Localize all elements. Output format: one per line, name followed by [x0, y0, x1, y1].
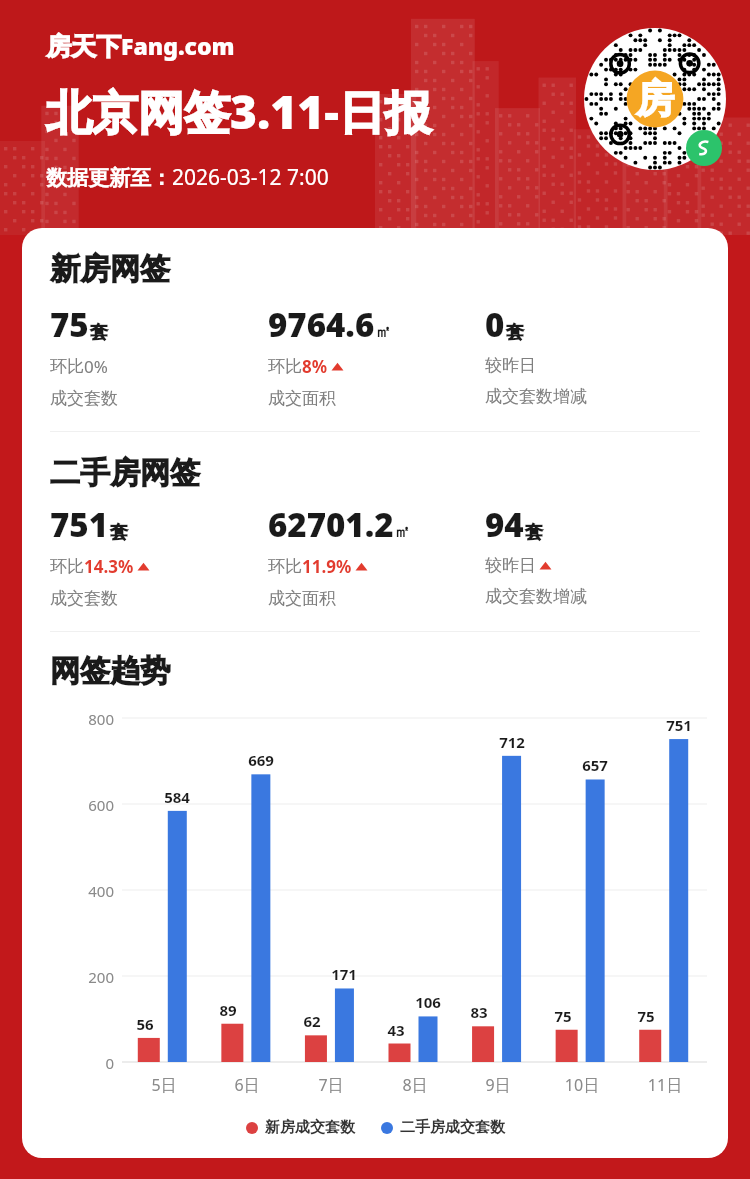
staticText: 较昨日	[485, 355, 536, 376]
staticText: 11.9%	[302, 555, 352, 578]
staticText: 房天下	[46, 31, 121, 62]
staticText: 6日	[217, 1074, 277, 1096]
staticText: ㎡	[375, 322, 391, 342]
staticText: 56	[121, 1014, 169, 1034]
staticText: 成交面积	[268, 588, 336, 609]
staticText: 11日	[635, 1074, 695, 1096]
staticText: 75	[539, 1006, 587, 1026]
staticText: 10日	[552, 1074, 612, 1096]
button[interactable]: 9764.6	[268, 302, 485, 409]
staticText: 94	[485, 502, 524, 547]
staticText: ㎡	[394, 522, 410, 542]
staticText: 9日	[468, 1074, 528, 1096]
staticText: 400	[62, 881, 114, 901]
staticText: 成交套数增减	[485, 586, 587, 607]
staticText: 0	[62, 1053, 114, 1073]
staticText: 83	[455, 1002, 503, 1022]
staticText: 89	[204, 1000, 252, 1020]
staticText: 套	[506, 321, 524, 344]
staticText: 2026-03-12 7:00	[172, 163, 329, 192]
staticText: 新房网签	[50, 250, 170, 288]
staticText: 套	[525, 521, 543, 544]
staticText: 套	[110, 521, 128, 544]
staticText: 584	[153, 787, 201, 807]
staticText: 成交套数增减	[485, 386, 587, 407]
button[interactable]: 751	[50, 502, 268, 609]
staticText: Fang.com	[121, 30, 235, 61]
button[interactable]: 0	[485, 302, 718, 407]
button[interactable]: 75	[50, 302, 268, 409]
staticText: 成交套数	[50, 388, 118, 409]
staticText: 800	[62, 709, 114, 729]
staticText: 712	[488, 732, 536, 752]
staticText: 62701.2	[268, 502, 394, 547]
staticText: 75	[622, 1006, 670, 1026]
staticText: 较昨日	[485, 555, 536, 576]
staticText: 200	[62, 967, 114, 987]
button[interactable]: 扫码关注房天下小程序	[584, 28, 726, 170]
button[interactable]: 二手房成交套数	[381, 1118, 505, 1137]
staticText: 43	[372, 1020, 420, 1040]
button[interactable]: 新房成交套数	[246, 1118, 355, 1137]
staticText: 14.3%	[84, 555, 134, 578]
staticText: 成交套数	[50, 588, 118, 609]
staticText: 房	[636, 75, 674, 123]
staticText: 7日	[301, 1074, 361, 1096]
staticText: 0	[485, 302, 505, 347]
staticText: 新房成交套数	[265, 1118, 355, 1137]
staticText: 环比	[50, 356, 84, 377]
staticText: 171	[320, 964, 368, 984]
staticText: 8%	[302, 355, 328, 378]
staticText: 751	[50, 502, 109, 547]
staticText: 北京网签3.11-日报	[46, 80, 431, 143]
staticText: 600	[62, 795, 114, 815]
staticText: 5日	[134, 1074, 194, 1096]
staticText: 8日	[385, 1074, 445, 1096]
staticText: 环比	[50, 556, 84, 577]
staticText: 106	[404, 992, 452, 1012]
staticText: 62	[288, 1011, 336, 1031]
staticText: 669	[237, 750, 285, 770]
button[interactable]: 62701.2	[268, 502, 485, 609]
staticText: 二手房成交套数	[400, 1118, 505, 1137]
staticText: 套	[90, 321, 108, 344]
staticText: 环比	[268, 556, 302, 577]
staticText: 网签趋势	[50, 652, 170, 690]
staticText: 9764.6	[268, 302, 375, 347]
staticText: 0%	[84, 355, 108, 378]
staticText: 75	[50, 302, 89, 347]
staticText: 751	[655, 715, 703, 735]
staticText: 成交面积	[268, 388, 336, 409]
button[interactable]: 94	[485, 502, 718, 607]
staticText: 数据更新至：	[46, 165, 172, 191]
staticText: 环比	[268, 356, 302, 377]
staticText: 二手房网签	[50, 454, 200, 492]
staticText: 657	[571, 755, 619, 775]
